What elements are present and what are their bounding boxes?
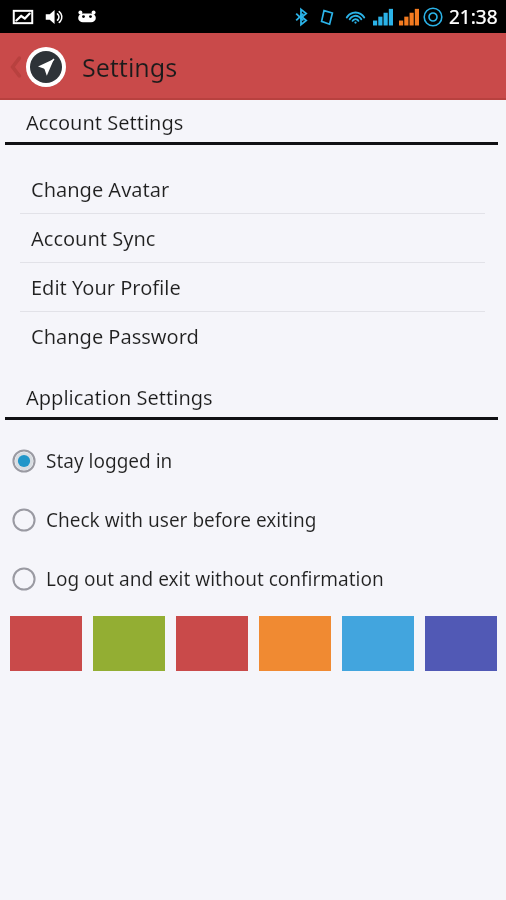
staticText: Account Settings: [26, 109, 184, 136]
button[interactable]: Navigate up: [6, 43, 70, 91]
staticText: Change Avatar: [31, 176, 170, 203]
staticText: Application Settings: [26, 384, 213, 411]
button[interactable]: Change Avatar: [0, 165, 506, 213]
staticText: 21:38: [449, 4, 498, 30]
staticText: Edit Your Profile: [31, 274, 181, 301]
staticText: Account Sync: [31, 225, 156, 252]
staticText: Stay logged in: [46, 448, 173, 474]
staticText: Check with user before exiting: [46, 507, 317, 533]
button[interactable]: Stay logged in: [0, 431, 506, 490]
button[interactable]: Log out and exit without confirmation: [0, 549, 506, 608]
button[interactable]: Account Sync: [0, 214, 506, 262]
button[interactable]: Edit Your Profile: [0, 263, 506, 311]
button[interactable]: Change Password: [0, 312, 506, 360]
button[interactable]: Check with user before exiting: [0, 490, 506, 549]
staticText: Log out and exit without confirmation: [46, 566, 384, 592]
staticText: Change Password: [31, 323, 199, 350]
staticText: Settings: [82, 50, 178, 84]
